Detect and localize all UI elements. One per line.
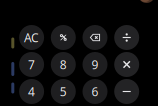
button[interactable]: 6 [82,79,107,104]
button[interactable]: 5 [51,79,76,104]
button[interactable]: 4 [19,79,44,104]
button[interactable]: All clear [19,25,44,50]
staticText: AC [24,29,39,45]
button[interactable]: Percent [51,25,76,50]
button[interactable]: Multiply [114,52,139,77]
button[interactable]: Divide [114,25,139,50]
staticText: 6 [91,83,98,99]
button[interactable]: 9 [82,52,107,77]
staticText: 5 [60,83,67,99]
button[interactable]: 8 [51,52,76,77]
staticText: 8 [60,56,67,72]
staticText: 7 [28,56,35,72]
staticText: 9 [91,56,98,72]
button[interactable]: 7 [19,52,44,77]
staticText: 4 [28,83,35,99]
button[interactable]: Subtract [114,79,139,104]
button[interactable]: Delete [82,25,107,50]
